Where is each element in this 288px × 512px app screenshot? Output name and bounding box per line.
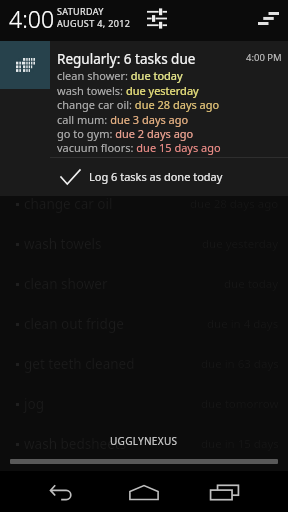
staticText: vacuum floors: due 15 days ago xyxy=(57,140,221,155)
staticText: get teeth cleaned xyxy=(24,355,135,373)
staticText: wash towels: due yesterday xyxy=(57,83,199,98)
button[interactable]: change car oil xyxy=(0,184,288,224)
other: Wi-Fi signal xyxy=(258,12,279,25)
button[interactable]: Log 6 tasks as done today xyxy=(0,158,288,195)
staticText: wash towels xyxy=(24,235,102,253)
staticText: clean shower xyxy=(24,275,108,293)
staticText: wash bedsheets xyxy=(24,435,127,453)
staticText: Regularly: 6 tasks due xyxy=(57,50,196,68)
button[interactable]: wash bedsheets xyxy=(0,424,288,464)
staticText: AUGUST 4, 2012 xyxy=(57,17,131,29)
staticText: 4:00 PM xyxy=(246,51,282,64)
staticText: go to gym: due 2 days ago xyxy=(57,126,194,141)
staticText: UGGLYNEXUS xyxy=(110,434,178,448)
staticText: change car oil xyxy=(24,195,113,213)
staticText: clean shower: due today xyxy=(57,68,183,83)
staticText: jog xyxy=(24,395,44,413)
button[interactable]: Recent apps xyxy=(196,472,252,512)
staticText: SATURDAY xyxy=(57,5,104,17)
staticText: call mum: due 3 days ago xyxy=(57,112,189,127)
button[interactable]: Back xyxy=(35,472,91,512)
staticText: 4:00 xyxy=(9,3,55,34)
button[interactable]: Quick settings xyxy=(139,3,175,34)
staticText: clean out fridge xyxy=(24,315,124,333)
staticText: change car oil: due 28 days ago xyxy=(57,97,220,112)
button[interactable]: Home xyxy=(116,472,172,512)
staticText: Log 6 tasks as done today xyxy=(89,169,223,184)
